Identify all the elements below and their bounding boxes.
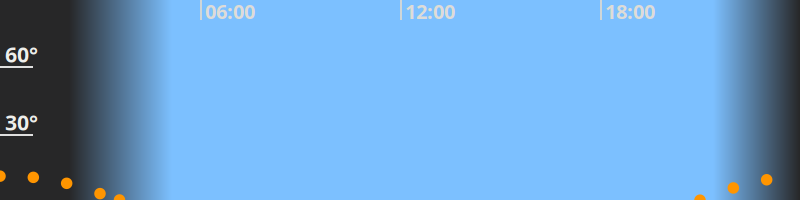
staticText: 30°	[5, 108, 38, 136]
staticText: 60°	[5, 40, 38, 68]
staticText: 06:00	[205, 0, 255, 25]
staticText: 12:00	[405, 0, 455, 25]
staticText: 18:00	[605, 0, 655, 25]
button[interactable]: Hourly temperature chart	[0, 0, 800, 200]
